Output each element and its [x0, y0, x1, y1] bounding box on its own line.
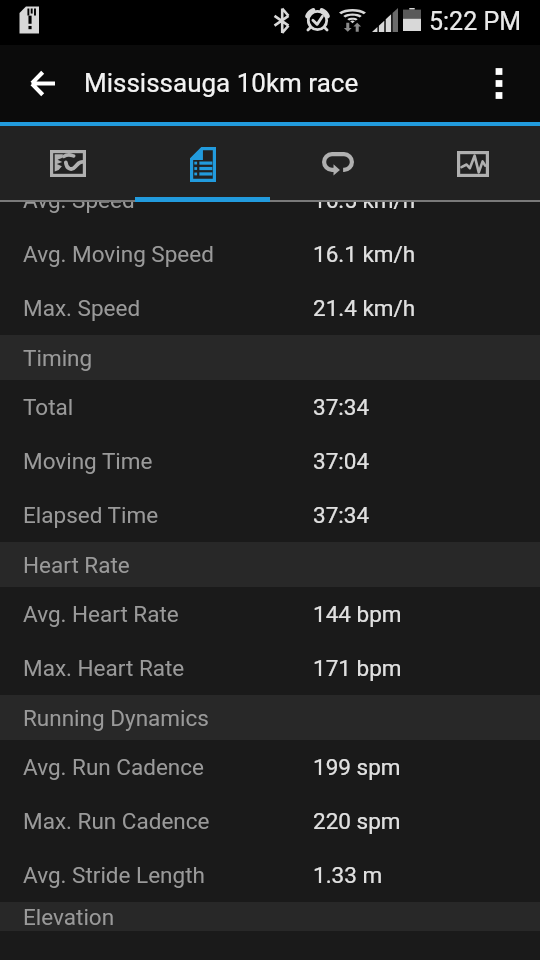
- button[interactable]: Avg. Stride Length: [0, 848, 540, 902]
- button[interactable]: Avg. Heart Rate: [0, 587, 540, 641]
- staticText: 5:22 PM: [429, 7, 522, 36]
- button[interactable]: More options: [482, 45, 540, 122]
- staticText: 1.33 m: [313, 862, 540, 888]
- staticText: Timing: [23, 345, 93, 371]
- button[interactable]: Max. Heart Rate: [0, 641, 540, 695]
- button[interactable]: Avg. Speed: [0, 202, 540, 227]
- staticText: 220 spm: [313, 808, 540, 834]
- staticText: Elevation: [23, 904, 115, 930]
- staticText: Total: [23, 394, 74, 420]
- staticText: Avg. Moving Speed: [23, 241, 214, 267]
- button[interactable]: Max. Speed: [0, 281, 540, 335]
- staticText: 37:34: [313, 502, 540, 528]
- staticText: 37:34: [313, 394, 540, 420]
- button[interactable]: Map tab: [0, 126, 135, 202]
- staticText: Mississauga 10km race: [84, 68, 359, 98]
- button[interactable]: Moving Time: [0, 434, 540, 488]
- staticText: Avg. Run Cadence: [23, 754, 204, 780]
- staticText: Elapsed Time: [23, 502, 159, 528]
- button[interactable]: Elapsed Time: [0, 488, 540, 542]
- staticText: Max. Speed: [23, 295, 141, 321]
- staticText: Avg. Speed: [23, 202, 135, 213]
- staticText: Avg. Heart Rate: [23, 601, 179, 627]
- staticText: Max. Run Cadence: [23, 808, 210, 834]
- button[interactable]: Laps tab: [270, 126, 405, 202]
- staticText: Running Dynamics: [23, 705, 209, 731]
- staticText: 21.4 km/h: [313, 295, 540, 321]
- staticText: Max. Heart Rate: [23, 655, 185, 681]
- staticText: 16.5 km/h: [313, 202, 540, 213]
- staticText: 16.1 km/h: [313, 241, 540, 267]
- button[interactable]: Details tab: [135, 126, 270, 202]
- button[interactable]: Max. Run Cadence: [0, 794, 540, 848]
- staticText: 144 bpm: [313, 601, 540, 627]
- button[interactable]: Total: [0, 380, 540, 434]
- button[interactable]: Charts tab: [405, 126, 540, 202]
- staticText: Heart Rate: [23, 552, 130, 578]
- button[interactable]: Avg. Run Cadence: [0, 740, 540, 794]
- staticText: Moving Time: [23, 448, 153, 474]
- staticText: 171 bpm: [313, 655, 540, 681]
- staticText: 37:04: [313, 448, 540, 474]
- staticText: Avg. Stride Length: [23, 862, 205, 888]
- button[interactable]: Avg. Moving Speed: [0, 227, 540, 281]
- button[interactable]: Navigate up: [0, 45, 78, 122]
- staticText: 199 spm: [313, 754, 540, 780]
